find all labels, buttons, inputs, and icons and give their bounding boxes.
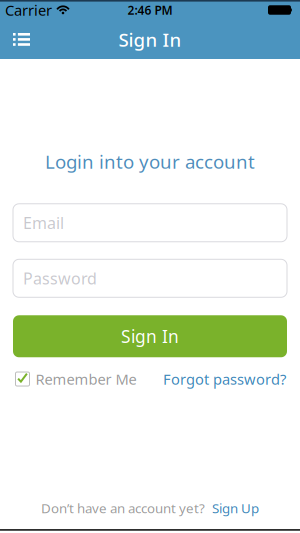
staticText: Sign In: [121, 325, 179, 348]
staticText: Don’t have an account yet?: [41, 499, 205, 517]
staticText: Email: [23, 212, 64, 233]
staticText: Password: [23, 268, 97, 289]
button[interactable]: [0, 20, 30, 59]
staticText: 2:46 PM: [127, 2, 172, 18]
staticText: Login into your account: [45, 149, 255, 174]
staticText: Sign Up: [212, 499, 259, 517]
staticText: Sign In: [118, 27, 181, 52]
staticText: Carrier: [5, 0, 52, 20]
button[interactable]: Sign Up: [212, 499, 259, 517]
button[interactable]: Sign In: [13, 315, 287, 357]
button[interactable]: Password: [13, 259, 287, 297]
button[interactable]: Forgot password?: [163, 369, 286, 389]
staticText: Forgot password?: [163, 369, 286, 389]
button[interactable]: Remember Me: [15, 369, 136, 389]
staticText: Remember Me: [35, 369, 136, 389]
button[interactable]: Email: [13, 204, 287, 242]
